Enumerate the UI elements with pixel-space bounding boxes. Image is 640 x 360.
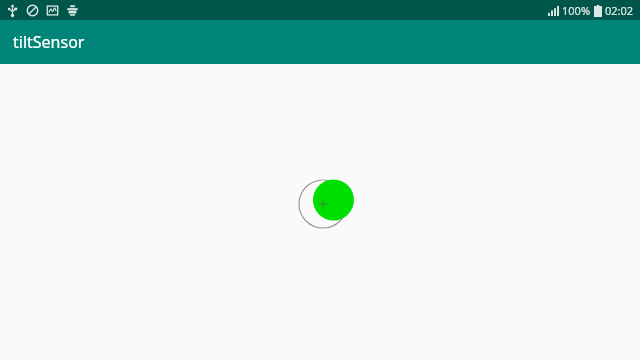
staticText: 02:02	[605, 3, 634, 18]
staticText: 100%	[562, 3, 591, 18]
staticText: tiltSensor	[13, 31, 85, 53]
button[interactable]: tiltSensor	[0, 20, 640, 64]
